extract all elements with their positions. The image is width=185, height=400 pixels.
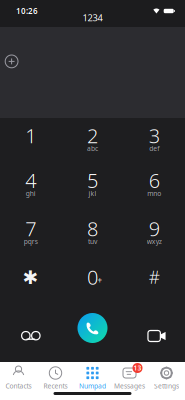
staticText: Recents: [43, 381, 67, 390]
staticText: pqrs: [24, 237, 38, 246]
button[interactable]: Call: [62, 305, 123, 362]
button[interactable]: Contacts: [0, 366, 37, 390]
staticText: 1: [25, 122, 36, 149]
button[interactable]: 1: [0, 118, 62, 165]
button[interactable]: #: [123, 259, 185, 305]
staticText: 13: [133, 364, 141, 372]
staticText: Messages: [114, 381, 145, 390]
button[interactable]: FaceTime: [123, 305, 185, 362]
staticText: 7: [25, 215, 36, 242]
button[interactable]: 8: [62, 212, 123, 259]
button[interactable]: 9: [123, 212, 185, 259]
staticText: Settings: [154, 381, 179, 390]
staticText: tuv: [88, 237, 97, 246]
staticText: Contacts: [5, 381, 31, 390]
staticText: 6: [149, 167, 160, 194]
staticText: Numpad: [79, 381, 106, 390]
button[interactable]: Settings: [148, 366, 185, 390]
staticText: abc: [87, 144, 98, 153]
button[interactable]: Add number: [0, 27, 18, 68]
button[interactable]: 4: [0, 165, 62, 212]
staticText: jkl: [88, 189, 96, 198]
staticText: wxyz: [147, 237, 162, 246]
staticText: #: [149, 265, 160, 288]
button[interactable]: 2: [62, 118, 123, 165]
button[interactable]: 7: [0, 212, 62, 259]
button[interactable]: 13: [111, 366, 148, 390]
staticText: 0: [87, 264, 98, 290]
staticText: 9: [149, 215, 160, 242]
staticText: 3: [149, 122, 160, 149]
staticText: 2: [87, 122, 98, 149]
button[interactable]: Voicemail: [0, 305, 62, 362]
button[interactable]: 6: [123, 165, 185, 212]
button[interactable]: ✱: [0, 259, 62, 305]
staticText: def: [149, 144, 159, 153]
button[interactable]: Recents: [37, 366, 74, 390]
staticText: 10:26: [16, 6, 38, 16]
staticText: 8: [87, 215, 98, 242]
staticText: 4: [25, 167, 36, 194]
staticText: ghi: [26, 189, 36, 198]
staticText: 1234: [82, 11, 102, 24]
staticText: 5: [87, 167, 98, 194]
staticText: mno: [147, 189, 161, 198]
button[interactable]: Numpad: [74, 366, 111, 390]
staticText: ✱: [23, 267, 39, 288]
button[interactable]: 0: [62, 259, 123, 305]
button[interactable]: 5: [62, 165, 123, 212]
staticText: +: [97, 275, 102, 286]
button[interactable]: 3: [123, 118, 185, 165]
